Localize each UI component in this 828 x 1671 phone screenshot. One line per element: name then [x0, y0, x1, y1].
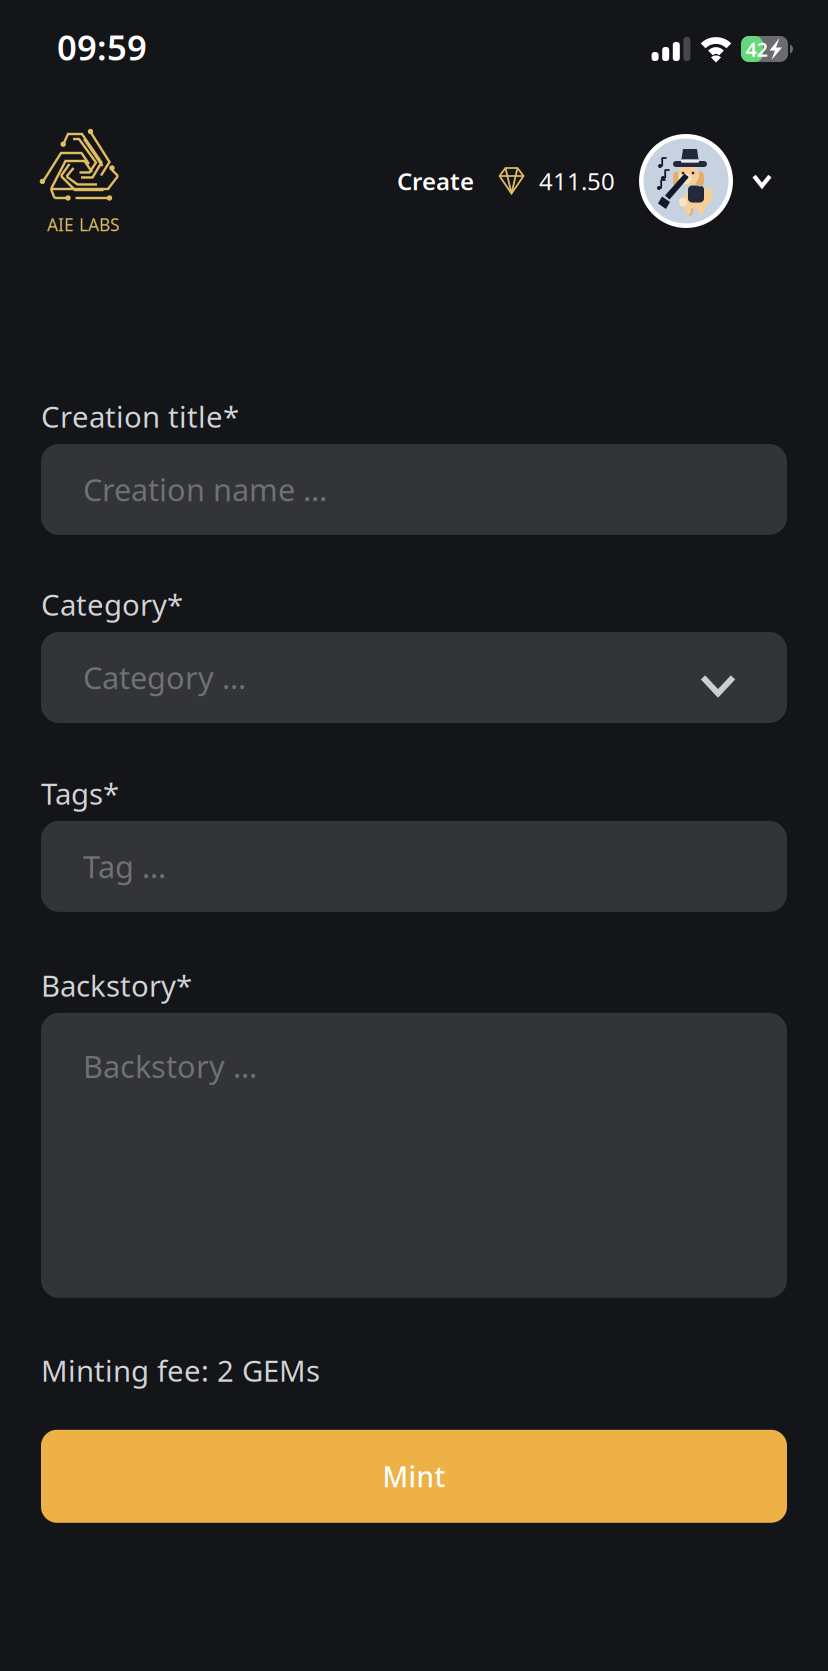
button[interactable]: Mint: [41, 1430, 787, 1523]
staticText: Minting fee: 2 GEMs: [41, 1351, 320, 1390]
button[interactable]: Backstory ...: [41, 1013, 787, 1298]
staticText: Creation name ...: [83, 469, 327, 510]
staticText: 09:59: [57, 24, 147, 70]
staticText: Backstory*: [41, 966, 192, 1005]
staticText: Create: [397, 165, 474, 197]
staticText: Tag ...: [83, 846, 166, 887]
staticText: AIE LABS: [47, 213, 120, 236]
button[interactable]: Create: [397, 165, 474, 197]
button[interactable]: Tag ...: [41, 821, 787, 912]
staticText: 411.50: [539, 165, 615, 197]
button[interactable]: Account menu: [743, 162, 781, 200]
button[interactable]: Profile: [639, 134, 733, 228]
button[interactable]: Creation name ...: [41, 444, 787, 535]
staticText: Backstory ...: [83, 1046, 257, 1086]
button[interactable]: Category ...: [41, 632, 787, 723]
staticText: 42: [745, 36, 767, 62]
staticText: Creation title*: [41, 397, 239, 436]
staticText: Category*: [41, 585, 183, 624]
staticText: Category ...: [83, 657, 246, 698]
staticText: Mint: [382, 1458, 445, 1495]
staticText: Tags*: [41, 774, 119, 813]
